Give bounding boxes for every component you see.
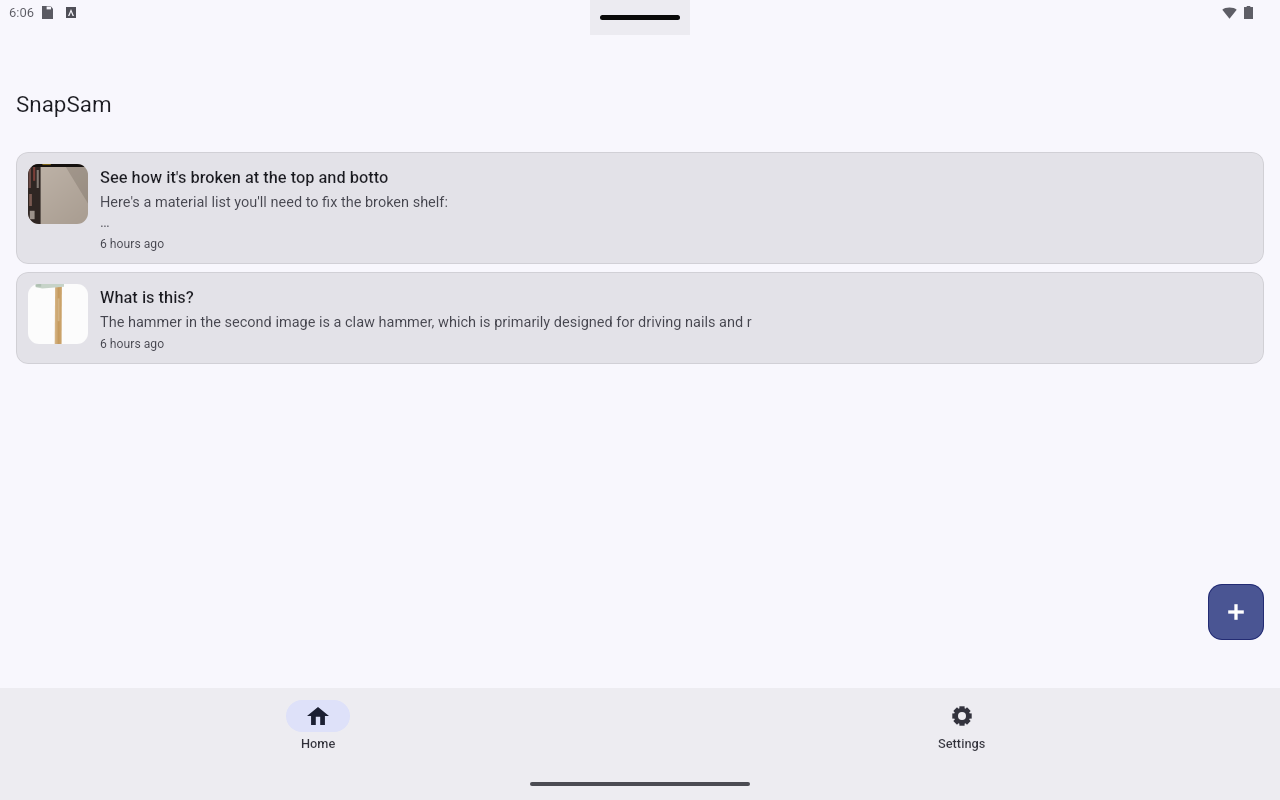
staticText: SnapSam <box>16 91 112 117</box>
button[interactable]: See how it's broken at the top and botto <box>16 152 1264 264</box>
button[interactable]: Add <box>1208 584 1264 640</box>
button[interactable]: Home <box>0 688 638 768</box>
button[interactable]: Settings <box>642 688 1280 768</box>
staticText: Settings <box>938 736 986 751</box>
staticText: The hammer in the second image is a claw… <box>100 314 752 331</box>
staticText: 6:06 <box>9 5 35 20</box>
staticText: … <box>100 214 110 231</box>
staticText: 6 hours ago <box>100 237 165 251</box>
staticText: What is this? <box>100 288 194 307</box>
staticText: See how it's broken at the top and botto <box>100 168 389 187</box>
staticText: 6 hours ago <box>100 337 165 351</box>
staticText: Home <box>301 736 336 751</box>
staticText: Here's a material list you'll need to fi… <box>100 194 448 211</box>
button[interactable]: What is this? <box>16 272 1264 364</box>
